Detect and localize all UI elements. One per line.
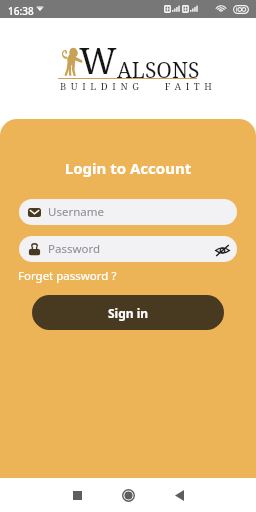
staticText: W (79, 36, 117, 85)
button[interactable]: Sign in (32, 295, 224, 330)
staticText: Login to Account (0, 158, 256, 178)
button[interactable]: Show password (211, 238, 233, 260)
button[interactable]: Forget password ? (18, 268, 117, 284)
staticText: ALSONS (117, 56, 200, 85)
button[interactable]: Back (159, 478, 199, 512)
button[interactable]: Username (19, 199, 237, 225)
staticText: Sign in (108, 305, 149, 321)
button[interactable]: Recent apps (57, 478, 97, 512)
button[interactable]: Home (108, 478, 148, 512)
staticText: BUILDING FAITH (60, 80, 217, 93)
staticText: Password (48, 241, 101, 257)
button[interactable]: Password (19, 236, 237, 262)
staticText: Username (48, 204, 104, 220)
staticText: 16:38 (8, 4, 34, 18)
